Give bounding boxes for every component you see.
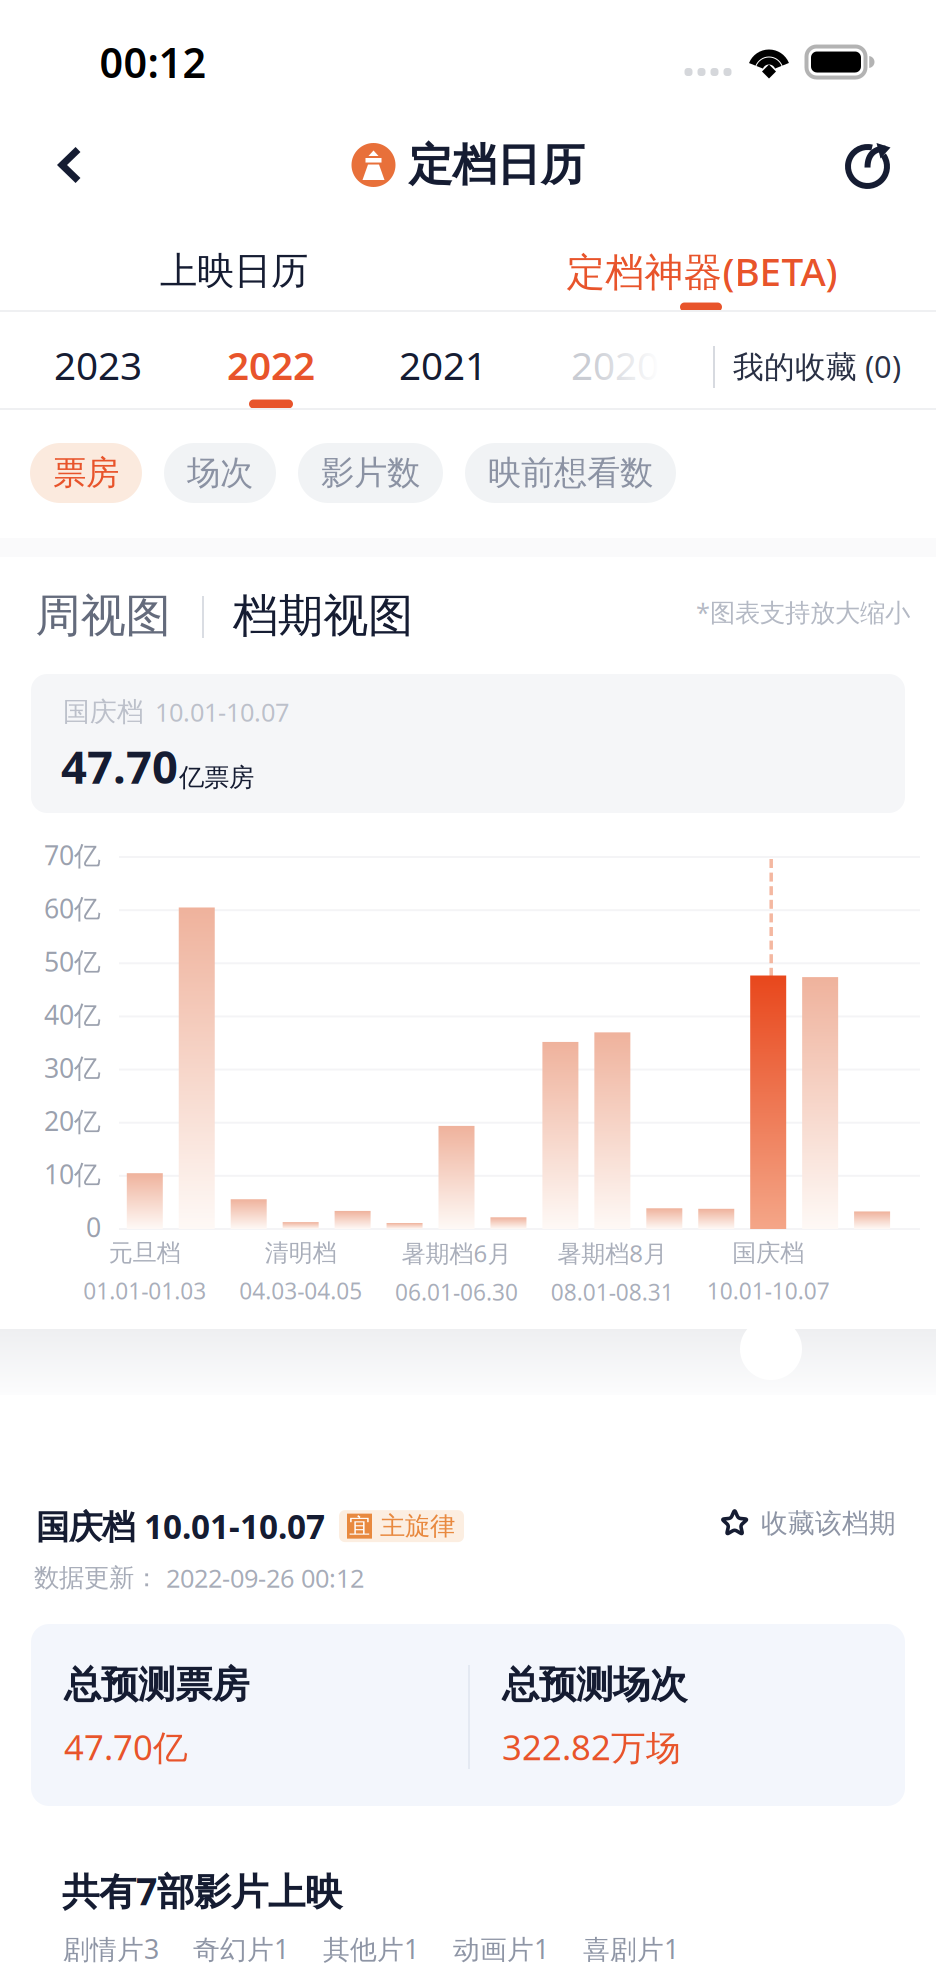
staticText: 50亿	[44, 944, 101, 979]
staticText: 档期视图	[233, 588, 413, 644]
staticText: 宜	[349, 1513, 370, 1539]
staticText: 60亿	[44, 890, 101, 926]
button[interactable]: 档期视图	[233, 588, 413, 644]
button[interactable]: 票房	[30, 443, 142, 503]
button[interactable]: Share	[825, 122, 911, 208]
staticText: 场次	[187, 452, 253, 493]
staticText: 2021	[399, 339, 487, 391]
button[interactable]: 收藏该档期	[720, 1507, 896, 1540]
staticText: 2020	[571, 339, 659, 391]
staticText: 10亿	[44, 1156, 101, 1192]
button[interactable]: 影片数	[298, 443, 443, 503]
staticText: 0	[86, 1209, 101, 1245]
staticText: 总预测票房	[64, 1662, 249, 1708]
staticText: 我的收藏 (0)	[733, 346, 901, 386]
button[interactable]: 2021	[363, 326, 523, 404]
staticText: 共有7部影片上映	[62, 1866, 342, 1916]
staticText: 定档日历	[408, 138, 584, 192]
staticText: 47.70	[61, 736, 178, 796]
staticText: 亿票房	[179, 762, 254, 793]
staticText: 映前想看数	[488, 452, 653, 493]
staticText: 2022-09-26 00:12	[166, 1561, 364, 1595]
staticText: 00:12	[99, 35, 206, 89]
staticText: 数据更新：	[34, 1562, 159, 1593]
staticText: 国庆档 10.01-10.07	[36, 1504, 325, 1548]
staticText: 国庆档	[732, 1238, 804, 1268]
button[interactable]: 我的收藏 (0)	[733, 331, 913, 401]
button[interactable]: 定档神器(BETA)	[487, 228, 917, 314]
staticText: 08.01-08.31	[551, 1277, 674, 1307]
button[interactable]: 映前想看数	[465, 443, 676, 503]
staticText: 国庆档	[63, 695, 144, 728]
button[interactable]: 2022	[191, 326, 351, 404]
staticText: 暑期档6月	[401, 1237, 511, 1269]
staticText: 47.70亿	[64, 1724, 188, 1770]
staticText: 元旦档	[109, 1238, 181, 1268]
button[interactable]: 周视图	[35, 588, 170, 644]
staticText: 票房	[53, 452, 119, 493]
staticText: 总预测场次	[502, 1662, 687, 1708]
staticText: 剧情片3	[63, 1931, 159, 1966]
staticText: 06.01-06.30	[395, 1277, 518, 1307]
staticText: 上映日历	[160, 248, 308, 294]
staticText: 周视图	[35, 588, 170, 644]
staticText: 动画片1	[453, 1931, 549, 1966]
staticText: 定档神器(BETA)	[566, 245, 837, 297]
staticText: 喜剧片1	[583, 1931, 679, 1966]
staticText: 322.82万场	[502, 1724, 681, 1770]
staticText: 40亿	[44, 997, 101, 1032]
staticText: 10.01-10.07	[707, 1276, 830, 1306]
staticText: *图表支持放大缩小	[696, 595, 910, 629]
staticText: 奇幻片1	[193, 1931, 289, 1966]
button[interactable]: 场次	[164, 443, 276, 503]
staticText: 主旋律	[380, 1511, 455, 1542]
staticText: 影片数	[321, 452, 420, 493]
button[interactable]: Back	[27, 122, 113, 208]
staticText: 70亿	[44, 837, 101, 873]
staticText: 2023	[54, 339, 142, 391]
staticText: 收藏该档期	[761, 1507, 896, 1540]
staticText: 04.03-04.05	[239, 1276, 362, 1306]
button[interactable]: 上映日历	[19, 228, 449, 314]
staticText: 01.01-01.03	[83, 1276, 206, 1306]
staticText: 30亿	[44, 1050, 101, 1085]
staticText: 清明档	[265, 1238, 337, 1268]
staticText: 10.01-10.07	[155, 695, 289, 729]
button[interactable]: 2023	[18, 326, 178, 404]
staticText: 2022	[227, 339, 315, 391]
staticText: 20亿	[44, 1103, 101, 1138]
button[interactable]: 2020	[535, 326, 695, 404]
staticText: 暑期档8月	[557, 1237, 667, 1269]
staticText: 其他片1	[323, 1931, 419, 1966]
